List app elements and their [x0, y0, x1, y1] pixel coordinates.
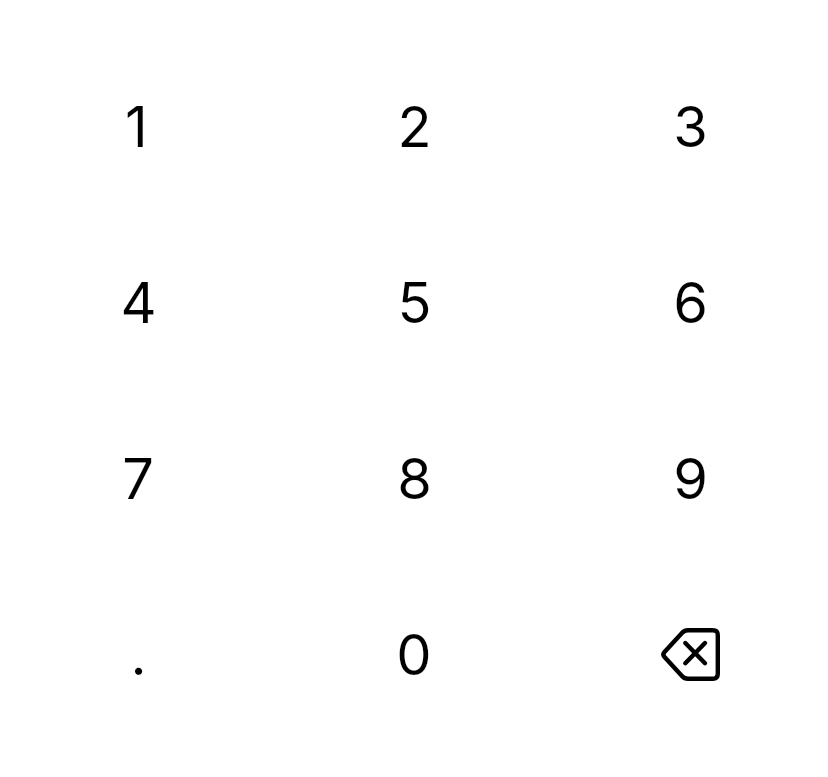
button[interactable]: .	[0, 567, 276, 743]
staticText: 2	[397, 93, 432, 161]
button[interactable]: 4	[0, 215, 276, 391]
button[interactable]: 0	[276, 567, 552, 743]
staticText: 6	[673, 269, 708, 337]
button[interactable]: 5	[276, 215, 552, 391]
staticText: 7	[122, 445, 154, 513]
button[interactable]: 1	[0, 39, 276, 215]
staticText: 5	[397, 269, 432, 337]
staticText: .	[130, 621, 147, 689]
button[interactable]: 2	[276, 39, 552, 215]
button[interactable]: 6	[552, 215, 828, 391]
button[interactable]: 7	[0, 391, 276, 567]
staticText: 8	[397, 445, 432, 513]
staticText: 4	[120, 269, 157, 337]
staticText: 1	[125, 93, 148, 161]
button[interactable]: Backspace	[552, 567, 828, 743]
staticText: 0	[396, 621, 432, 689]
button[interactable]: 3	[552, 39, 828, 215]
staticText: 3	[673, 93, 708, 161]
button[interactable]: 8	[276, 391, 552, 567]
staticText: 9	[673, 445, 708, 513]
button[interactable]: 9	[552, 391, 828, 567]
